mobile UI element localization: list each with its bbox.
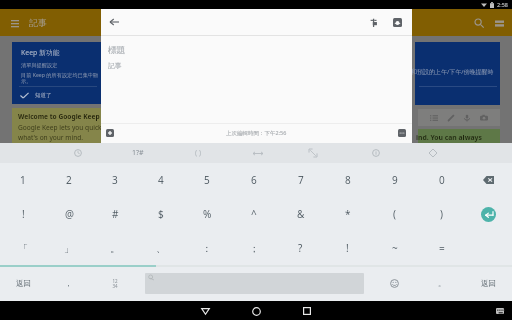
button[interactable]: 2	[46, 163, 92, 197]
staticText: 3	[112, 173, 118, 187]
button[interactable]: 8	[324, 163, 371, 197]
staticText: 7	[298, 173, 304, 187]
staticText: 返回	[16, 279, 31, 288]
button[interactable]: 、	[138, 231, 184, 265]
staticText: 返回	[481, 279, 496, 288]
button[interactable]: 4	[138, 163, 184, 197]
button[interactable]: %	[184, 197, 230, 231]
staticText: 2	[66, 173, 72, 187]
button[interactable]: 1	[0, 163, 46, 197]
button[interactable]: Open navigation drawer	[6, 14, 24, 32]
staticText: 記事	[29, 17, 47, 28]
staticText: 知道了	[35, 92, 52, 99]
staticText: ：	[202, 242, 212, 255]
button[interactable]: Enter	[465, 197, 512, 231]
button[interactable]: ；	[230, 231, 277, 265]
button[interactable]: 返回	[0, 265, 46, 301]
button[interactable]: Home	[247, 302, 265, 320]
button[interactable]: Back	[105, 13, 123, 31]
button[interactable]: $	[138, 197, 184, 231]
staticText: 、	[156, 242, 166, 255]
button[interactable]: Recent	[68, 143, 88, 163]
staticText: 4	[158, 173, 164, 187]
button[interactable]: Reminder	[388, 13, 406, 31]
staticText: 和預設的上午/下午/傍晚提醒時	[411, 68, 494, 76]
button[interactable]: (	[371, 197, 418, 231]
button[interactable]: More options	[394, 125, 410, 141]
staticText: #	[112, 207, 119, 221]
button[interactable]: ，	[46, 265, 92, 301]
staticText: ( )	[195, 148, 202, 158]
staticText: 記事	[108, 61, 122, 70]
staticText: 9	[392, 173, 398, 187]
button[interactable]: 0	[418, 163, 465, 197]
staticText: %	[203, 207, 212, 221]
button[interactable]: 9	[371, 163, 418, 197]
button[interactable]: Hide keyboard	[494, 305, 506, 317]
button[interactable]: 5	[184, 163, 230, 197]
staticText: 0	[439, 173, 445, 187]
button[interactable]: @	[46, 197, 92, 231]
staticText: *	[345, 207, 351, 221]
staticText: Keep 新功能	[21, 48, 60, 57]
button[interactable]: =	[418, 231, 465, 265]
staticText: )	[440, 207, 443, 221]
button[interactable]: #	[92, 197, 138, 231]
button[interactable]: 」	[46, 231, 92, 265]
staticText: &	[297, 207, 305, 221]
staticText: @	[65, 207, 74, 221]
button[interactable]: Emoji	[371, 265, 418, 301]
button[interactable]: Cursor move	[248, 143, 268, 163]
button[interactable]: Backspace	[465, 163, 512, 197]
button[interactable]: 知道了	[20, 91, 52, 100]
button[interactable]: Recent apps	[298, 302, 316, 320]
staticText: 「	[18, 242, 28, 255]
button[interactable]: 返回	[465, 265, 512, 301]
staticText: ；	[249, 242, 259, 255]
button[interactable]: )	[418, 197, 465, 231]
staticText: 清單與提醒設定	[21, 62, 58, 69]
staticText: 1?#	[132, 148, 144, 158]
button[interactable]: ：	[184, 231, 230, 265]
staticText: ?	[298, 241, 303, 255]
staticText: 目前 Keep 的所有設定均已集中顯示。	[21, 71, 101, 84]
button[interactable]: Pin note	[364, 13, 382, 31]
button[interactable]: ~	[371, 231, 418, 265]
button[interactable]: 1?#	[125, 143, 151, 163]
button[interactable]: 6	[230, 163, 277, 197]
staticText: 上次編輯時間：下午2:56	[226, 129, 287, 137]
staticText: 6	[251, 173, 257, 187]
staticText: !	[346, 241, 349, 255]
button[interactable]: 3	[92, 163, 138, 197]
button[interactable]: 「	[0, 231, 46, 265]
staticText: 12 34	[112, 278, 118, 289]
button[interactable]: Info	[366, 143, 386, 163]
button[interactable]: *	[324, 197, 371, 231]
button[interactable]: ?	[277, 231, 324, 265]
staticText: 2:58	[497, 1, 508, 8]
button[interactable]: Add	[102, 125, 118, 141]
button[interactable]: Back	[196, 302, 214, 320]
button[interactable]: ^	[230, 197, 277, 231]
button[interactable]: Resize keyboard	[303, 143, 323, 163]
staticText: 標題	[108, 45, 126, 56]
button[interactable]: Switch to numbers	[92, 265, 138, 301]
button[interactable]: 7	[277, 163, 324, 197]
button[interactable]: ( )	[186, 143, 210, 163]
button[interactable]: !	[324, 231, 371, 265]
staticText: ind. You can always search	[416, 133, 498, 142]
staticText: ，	[65, 279, 73, 288]
button[interactable]: Toggle list view	[489, 13, 509, 33]
button[interactable]: !	[0, 197, 46, 231]
button[interactable]: 。	[92, 231, 138, 265]
button[interactable]: &	[277, 197, 324, 231]
staticText: ^	[251, 207, 257, 221]
button[interactable]: Search	[469, 13, 489, 33]
button[interactable]: More	[423, 143, 443, 163]
staticText: (	[393, 207, 396, 221]
staticText: 1	[20, 173, 26, 187]
staticText: Welcome to Google Keep	[18, 112, 100, 121]
